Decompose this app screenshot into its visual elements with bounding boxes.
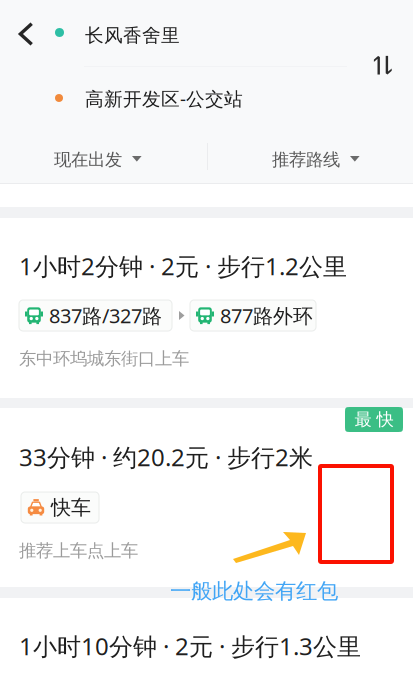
button[interactable]: 长风香舍里: [0, 0, 300, 66]
button[interactable]: 推荐路线: [207, 134, 413, 182]
staticText: 东中环坞城东街口上车: [19, 348, 189, 369]
staticText: 1小时2分钟 · 2元 · 步行1.2公里: [19, 250, 347, 282]
staticText: 推荐上车点上车: [19, 540, 138, 561]
staticText: 一般此处会有红包: [170, 578, 338, 604]
button[interactable]: Back: [0, 6, 52, 62]
button[interactable]: 高新开发区-公交站: [0, 66, 300, 128]
staticText: 长风香舍里: [85, 24, 180, 47]
button[interactable]: 现在出发: [0, 134, 207, 182]
staticText: 推荐路线: [272, 149, 340, 170]
staticText: 最 快: [354, 409, 393, 430]
staticText: 837路/327路: [49, 302, 162, 329]
staticText: 现在出发: [54, 149, 122, 170]
staticText: 高新开发区-公交站: [85, 86, 243, 111]
button[interactable]: Swap origin and destination: [361, 43, 405, 87]
staticText: 33分钟 · 约20.2元 · 步行2米: [19, 441, 313, 473]
button[interactable]: 1小时2分钟 · 2元 · 步行1.2公里: [0, 218, 413, 398]
button[interactable]: 最 快: [0, 408, 413, 587]
staticText: 877路外环: [220, 302, 313, 329]
staticText: 1小时10分钟 · 2元 · 步行1.3公里: [19, 630, 361, 662]
staticText: 快车: [51, 495, 91, 520]
